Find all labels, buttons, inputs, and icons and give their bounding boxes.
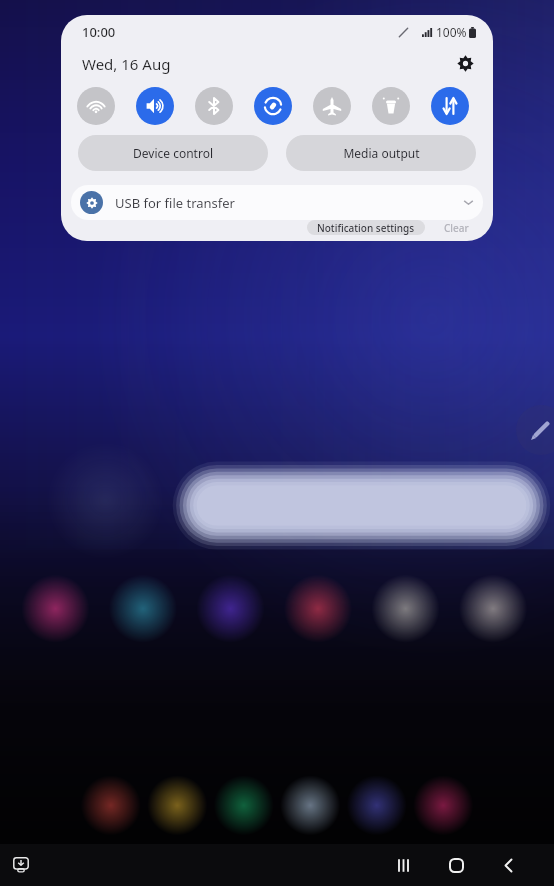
button[interactable]: Device control — [78, 135, 268, 171]
button[interactable]: Flashlight — [372, 87, 410, 125]
staticText: USB for file transfer — [115, 194, 235, 212]
button[interactable]: Recents — [383, 845, 423, 885]
button[interactable]: Notification settings — [307, 220, 425, 235]
button[interactable]: Air command pen — [525, 404, 554, 456]
staticText: Clear — [444, 221, 469, 235]
button[interactable]: Back — [488, 845, 528, 885]
button[interactable]: Screen capture — [1, 845, 41, 885]
button[interactable]: Media output — [286, 135, 476, 171]
button[interactable]: Auto rotate — [254, 87, 292, 125]
button[interactable]: Bluetooth — [195, 87, 233, 125]
button[interactable]: Sound — [136, 87, 174, 125]
button[interactable]: Flight mode — [313, 87, 351, 125]
staticText: 100% — [436, 24, 467, 40]
button[interactable]: USB for file transfer — [71, 185, 483, 220]
button[interactable]: Home — [436, 845, 476, 885]
button[interactable]: Wi-Fi — [77, 87, 115, 125]
staticText: Wed, 16 Aug — [82, 54, 171, 74]
staticText: Notification settings — [317, 221, 415, 235]
button[interactable]: Mobile data — [431, 87, 469, 125]
button[interactable]: Clear — [434, 220, 479, 235]
button[interactable]: Settings — [448, 48, 482, 79]
staticText: 10:00 — [82, 23, 116, 41]
staticText: Device control — [133, 145, 213, 161]
staticText: Media output — [343, 145, 420, 161]
